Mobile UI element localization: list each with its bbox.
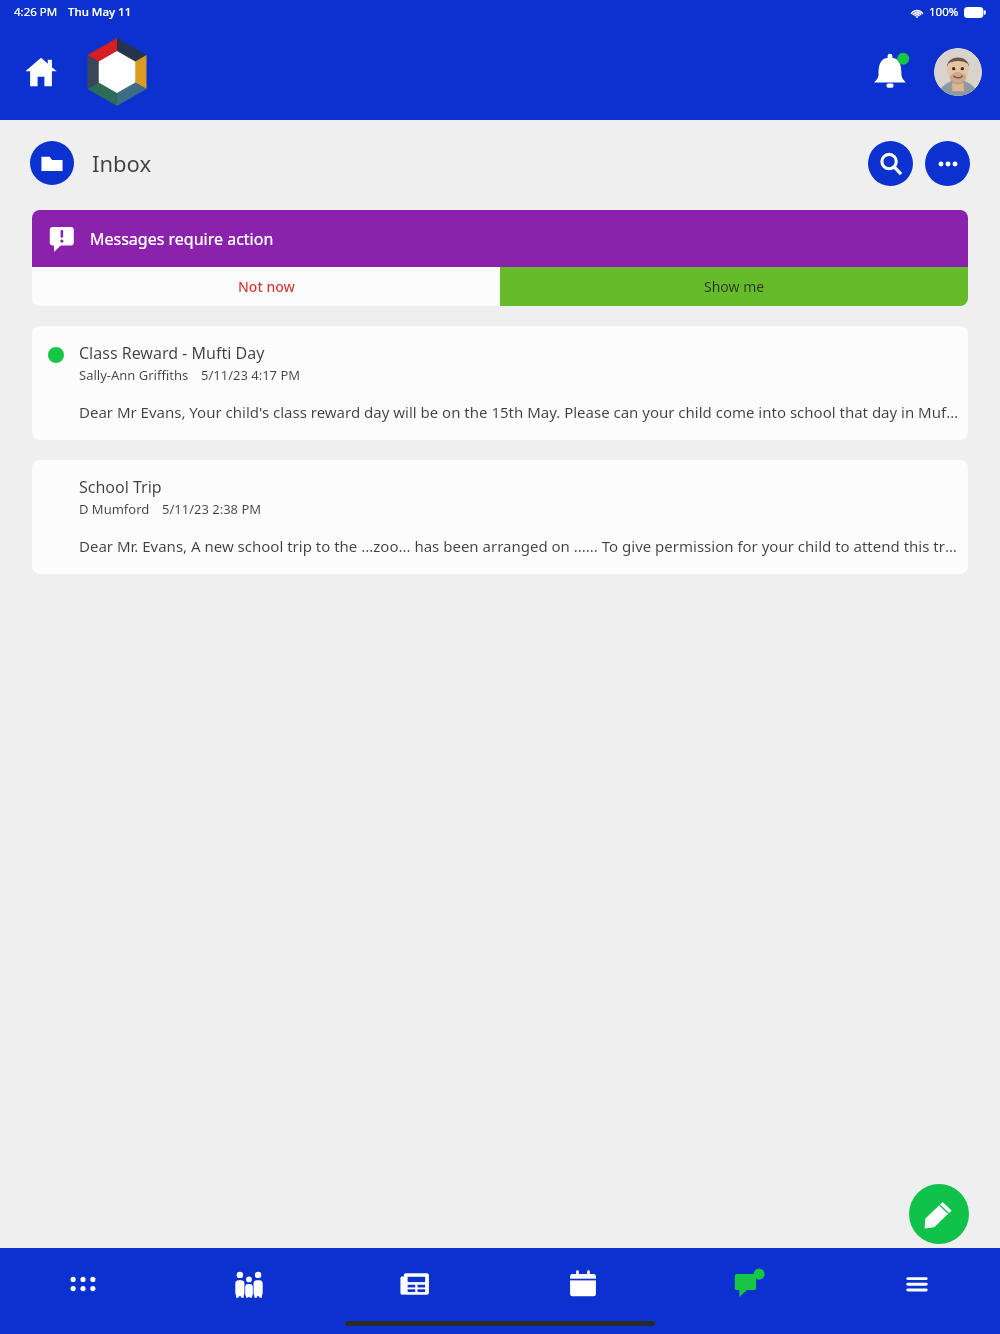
button[interactable]: News [332,1248,499,1320]
button[interactable]: Calendar [499,1248,666,1320]
staticText: Class Reward - Mufti Day [79,342,265,364]
button[interactable]: Notifications [864,46,916,98]
staticText: Messages require action [90,228,274,250]
button[interactable]: Apps [0,1248,166,1320]
button[interactable] [78,33,156,111]
staticText: 5/11/23 2:38 PM [162,500,262,518]
staticText: 5/11/23 4:17 PM [201,366,301,384]
button[interactable]: Home [18,49,64,95]
button[interactable]: Family [166,1248,332,1320]
staticText: School Trip [79,476,162,498]
staticText: Not now [238,277,295,296]
button[interactable]: Search [868,141,913,186]
staticText: Thu May 11 [68,4,132,20]
staticText: Sally-Ann Griffiths [79,366,189,384]
button[interactable]: Messages [666,1248,833,1320]
staticText: Dear Mr Evans, Your child's class reward… [79,402,960,422]
button[interactable]: Profile [934,48,982,96]
button[interactable]: Class Reward - Mufti Day [32,326,968,440]
button[interactable]: Menu [833,1248,1000,1320]
staticText: Inbox [92,148,152,178]
staticText: D Mumford [79,500,150,518]
staticText: Show me [704,277,765,296]
button[interactable]: Not now [32,267,500,306]
button[interactable]: More options [925,141,970,186]
staticText: Dear Mr. Evans, A new school trip to the… [79,536,960,556]
button[interactable]: School Trip [32,460,968,574]
button[interactable]: Compose message [909,1184,969,1244]
button[interactable]: Show me [500,267,968,306]
staticText: 100% [929,4,959,20]
staticText: 4:26 PM [14,4,58,20]
